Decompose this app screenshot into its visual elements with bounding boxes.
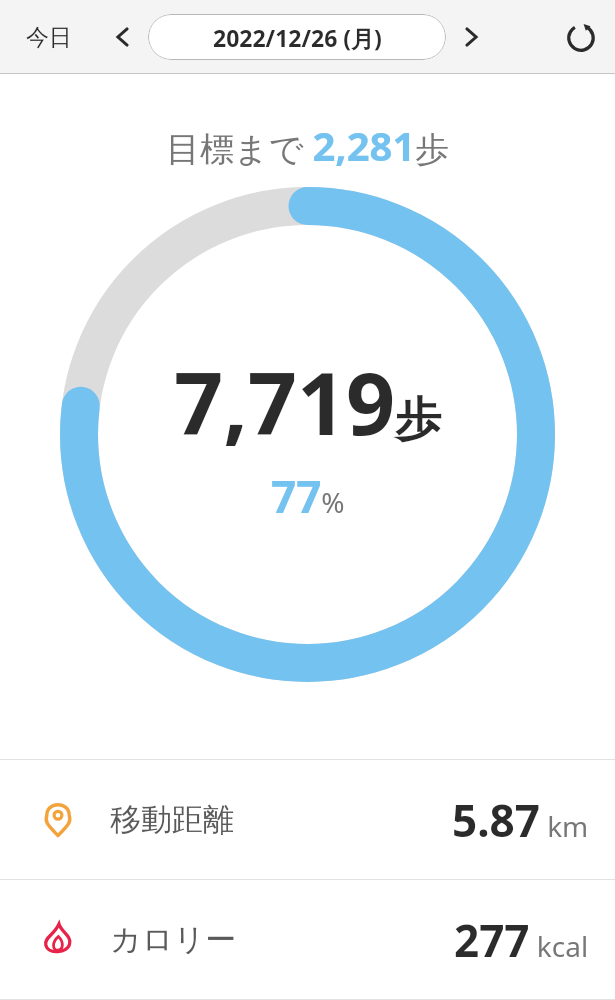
button[interactable]: 今日 [0,15,82,60]
staticText: 7,719歩 [174,343,442,460]
staticText: 2022/12/26 (月) [213,22,382,53]
staticText: 5.87 km [452,790,589,850]
staticText: カロリー [110,920,237,959]
staticText: 277 kcal [454,910,589,970]
other: Calories [38,920,78,960]
other: Distance [38,800,78,840]
staticText: 77% [271,466,345,526]
button[interactable]: Distance [0,760,615,879]
button[interactable]: Previous day [100,15,144,59]
staticText: 今日 [26,23,72,52]
button[interactable]: Calories [0,880,615,999]
button[interactable]: Next day [450,15,494,59]
button[interactable]: 2022/12/26 (月) [148,14,446,60]
staticText: 目標まで 2,281歩 [166,118,450,172]
staticText: 移動距離 [110,800,234,839]
button[interactable]: Refresh [555,11,607,63]
